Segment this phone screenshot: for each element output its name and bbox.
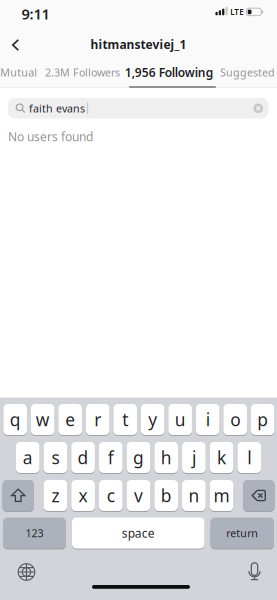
button[interactable]: v xyxy=(127,480,150,511)
button[interactable]: g xyxy=(127,442,150,473)
button[interactable]: c xyxy=(99,480,123,511)
staticText: k xyxy=(217,446,226,469)
button[interactable]: Search xyxy=(8,98,268,118)
button[interactable]: s xyxy=(44,442,67,473)
staticText: faith evans xyxy=(29,101,85,115)
staticText: return xyxy=(226,526,258,540)
staticText: j xyxy=(192,446,196,469)
staticText: y xyxy=(148,408,157,431)
staticText: d xyxy=(78,446,89,469)
button[interactable]: 2.3M Followers xyxy=(45,65,120,79)
button[interactable]: i xyxy=(196,404,219,435)
staticText: f xyxy=(108,446,114,469)
staticText: u xyxy=(175,408,186,431)
button[interactable]: Clear search xyxy=(253,103,263,113)
button[interactable]: k xyxy=(210,442,233,473)
button[interactable]: Shift xyxy=(2,480,34,511)
button[interactable]: space xyxy=(72,517,204,548)
staticText: h xyxy=(161,446,172,469)
staticText: m xyxy=(214,484,230,507)
button[interactable]: n xyxy=(182,480,206,511)
button[interactable]: z xyxy=(44,480,67,511)
button[interactable]: y xyxy=(141,404,164,435)
staticText: l xyxy=(247,446,251,469)
staticText: Suggested xyxy=(220,65,275,79)
button[interactable]: Delete xyxy=(243,480,275,511)
staticText: i xyxy=(206,408,210,431)
staticText: s xyxy=(51,446,59,469)
button[interactable]: w xyxy=(31,404,54,435)
button[interactable]: Suggested xyxy=(220,65,275,79)
staticText: v xyxy=(134,484,143,507)
staticText: t xyxy=(122,408,128,431)
staticText: w xyxy=(36,408,50,431)
staticText: o xyxy=(230,408,240,431)
button[interactable]: r xyxy=(86,404,109,435)
button[interactable]: x xyxy=(71,480,95,511)
staticText: 9:11 xyxy=(21,4,49,24)
button[interactable]: Mutual xyxy=(0,65,37,79)
button[interactable]: 123 xyxy=(3,517,66,548)
button[interactable]: Back xyxy=(5,35,25,55)
staticText: hitmansteviej_1 xyxy=(90,36,186,52)
button[interactable]: a xyxy=(16,442,39,473)
button[interactable]: j xyxy=(182,442,206,473)
staticText: g xyxy=(133,446,144,469)
button[interactable]: d xyxy=(71,442,95,473)
staticText: r xyxy=(94,408,101,431)
staticText: 123 xyxy=(25,526,43,540)
button[interactable]: m xyxy=(210,480,233,511)
staticText: Mutual xyxy=(0,65,37,79)
button[interactable]: Dictate xyxy=(244,561,264,583)
staticText: e xyxy=(65,408,75,431)
staticText: c xyxy=(107,484,115,507)
staticText: 2.3M Followers xyxy=(45,65,120,79)
button[interactable]: u xyxy=(168,404,192,435)
staticText: a xyxy=(23,446,33,469)
staticText: b xyxy=(161,484,172,507)
staticText: q xyxy=(10,408,21,431)
staticText: No users found xyxy=(8,129,93,144)
staticText: 1,956 Following xyxy=(125,64,214,80)
button[interactable]: q xyxy=(3,404,27,435)
button[interactable]: l xyxy=(237,442,261,473)
button[interactable]: return xyxy=(210,517,274,548)
staticText: n xyxy=(188,484,199,507)
staticText: z xyxy=(51,484,59,507)
button[interactable]: h xyxy=(154,442,178,473)
staticText: LTE xyxy=(230,6,243,17)
button[interactable]: t xyxy=(113,404,137,435)
button[interactable]: Next keyboard xyxy=(16,562,36,582)
staticText: space xyxy=(122,525,155,541)
button[interactable]: p xyxy=(251,404,274,435)
button[interactable]: 1,956 Following xyxy=(125,64,214,80)
button[interactable]: b xyxy=(154,480,178,511)
button[interactable]: e xyxy=(58,404,82,435)
button[interactable]: f xyxy=(99,442,123,473)
button[interactable]: o xyxy=(223,404,247,435)
staticText: p xyxy=(257,408,268,431)
staticText: x xyxy=(79,484,88,507)
